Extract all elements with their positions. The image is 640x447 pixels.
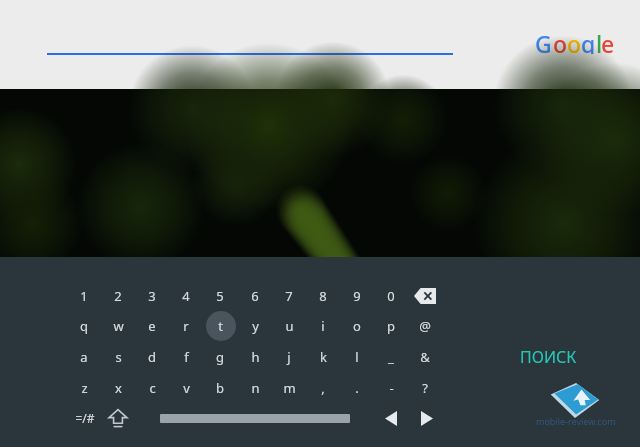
staticText: e [601,28,615,54]
button[interactable]: 2 [101,281,135,311]
button[interactable]: u [272,311,306,341]
staticText: b [216,379,224,397]
staticText: - [389,379,394,397]
button[interactable]: j [272,342,306,372]
button[interactable]: - [374,373,408,403]
button[interactable]: m [272,373,306,403]
staticText: 0 [387,287,395,305]
staticText: 3 [148,287,156,305]
button[interactable]: k [306,342,340,372]
button[interactable]: Google [535,28,615,54]
staticText: . [355,379,359,397]
button[interactable]: w [101,311,135,341]
button[interactable]: , [306,373,340,403]
staticText: , [321,379,325,397]
button[interactable]: 8 [306,281,340,311]
staticText: 6 [251,287,259,305]
button[interactable]: y [238,311,272,341]
button[interactable]: q [67,311,101,341]
button[interactable]: n [238,373,272,403]
button[interactable]: e [135,311,169,341]
staticText: n [251,379,260,397]
staticText: @ [419,317,431,335]
button[interactable]: ? [408,373,442,403]
staticText: u [285,317,294,335]
button[interactable]: 4 [169,281,203,311]
staticText: j [287,348,291,366]
staticText: 7 [285,287,293,305]
staticText: r [183,317,189,335]
button[interactable]: _ [374,342,408,372]
staticText: g [216,348,224,366]
button[interactable]: v [169,373,203,403]
staticText: f [184,348,189,366]
button[interactable]: @ [408,311,442,341]
button[interactable]: b [203,373,237,403]
staticText: 1 [80,287,88,305]
button[interactable]: g [203,342,237,372]
button[interactable]: 9 [340,281,374,311]
button[interactable]: i [306,311,340,341]
button[interactable]: s [101,342,135,372]
button[interactable]: Move cursor right [412,404,442,432]
staticText: _ [388,348,394,366]
button[interactable]: 6 [238,281,272,311]
staticText: y [252,317,259,335]
button[interactable]: 0 [374,281,408,311]
button[interactable]: d [135,342,169,372]
button[interactable]: z [67,373,101,403]
button[interactable]: o [340,311,374,341]
button[interactable]: c [135,373,169,403]
staticText: 8 [319,287,327,305]
button[interactable]: t [203,311,237,341]
button[interactable]: p [374,311,408,341]
button[interactable]: a [67,342,101,372]
button[interactable]: ПОИСК [494,342,602,372]
staticText: v [183,379,190,397]
staticText: ? [422,379,428,397]
button[interactable]: Backspace [408,281,442,311]
staticText: & [420,348,430,366]
button[interactable]: Move cursor left [376,404,406,432]
staticText: l [355,348,359,366]
staticText: x [115,379,122,397]
staticText: 5 [216,287,224,305]
staticText: a [80,348,88,366]
staticText: m [283,379,296,397]
staticText: l [596,28,603,54]
button[interactable]: h [238,342,272,372]
button[interactable]: f [169,342,203,372]
button[interactable]: x [101,373,135,403]
button[interactable]: . [340,373,374,403]
staticText: o [353,317,361,335]
button[interactable]: 3 [135,281,169,311]
staticText: G [535,28,552,54]
staticText: e [148,317,156,335]
button[interactable]: 1 [67,281,101,311]
button[interactable]: 5 [203,281,237,311]
staticText: 2 [114,287,122,305]
staticText: h [251,348,260,366]
button[interactable]: Space [160,406,350,430]
staticText: =/# [75,410,95,426]
button[interactable]: l [340,342,374,372]
staticText: o [567,28,582,54]
staticText: t [218,317,223,335]
staticText: q [80,317,88,335]
button[interactable]: Shift [101,403,135,433]
staticText: mobile-review.com [536,415,616,427]
staticText: c [149,379,156,397]
staticText: z [81,379,88,397]
button[interactable]: Search field [44,22,456,58]
staticText: s [115,348,122,366]
button[interactable]: & [408,342,442,372]
staticText: p [387,317,395,335]
staticText: ПОИСК [520,346,577,368]
button[interactable]: 7 [272,281,306,311]
button[interactable]: =/# [68,403,102,433]
staticText: w [113,317,124,335]
staticText: g [581,28,596,54]
button[interactable]: r [169,311,203,341]
staticText: i [321,317,325,335]
staticText: k [320,348,327,366]
